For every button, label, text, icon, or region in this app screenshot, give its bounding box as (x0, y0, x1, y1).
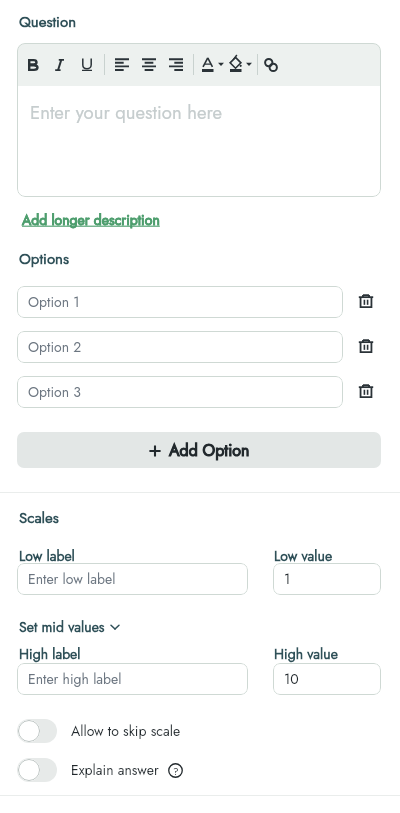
staticText: Option 2 (28, 337, 82, 357)
staticText: Enter high label (28, 669, 122, 689)
button[interactable]: Delete option 2 (355, 335, 377, 357)
button[interactable]: Align right (164, 43, 188, 86)
staticText: Add longer description (22, 210, 160, 230)
staticText: Option 3 (28, 382, 81, 402)
staticText: High value (274, 644, 338, 664)
button[interactable]: Align center (137, 43, 161, 86)
staticText: Low label (19, 546, 75, 566)
staticText: Question (19, 11, 77, 33)
button[interactable]: Italic (47, 43, 71, 86)
staticText: Allow to skip scale (71, 721, 181, 741)
staticText: Explain answer (71, 760, 159, 780)
staticText: Add Option (169, 439, 250, 462)
staticText: Set mid values (19, 617, 105, 637)
button[interactable]: 10 (273, 663, 381, 695)
staticText: 1 (284, 569, 291, 589)
button[interactable]: Fill colour (223, 43, 258, 86)
button[interactable]: Explain answer (17, 758, 183, 782)
button[interactable]: Underline (75, 43, 99, 86)
button[interactable]: Enter low label (17, 563, 248, 595)
staticText: Add longer description (22, 210, 160, 230)
staticText: Options (19, 248, 70, 270)
staticText: ? (173, 764, 179, 778)
button[interactable]: Align left (110, 43, 134, 86)
button[interactable]: Enter high label (17, 663, 248, 695)
button[interactable]: Set mid values (19, 617, 120, 637)
staticText: Enter your question here (30, 99, 223, 126)
staticText: 10 (284, 669, 299, 689)
staticText: High label (19, 644, 81, 664)
button[interactable]: Bold (20, 43, 44, 86)
staticText: Scales (19, 507, 59, 529)
staticText: Low value (274, 546, 333, 566)
button[interactable]: Delete option 1 (355, 290, 377, 312)
button[interactable]: Option 2 (17, 331, 343, 363)
other: Help (168, 763, 183, 778)
button[interactable]: Option 3 (17, 376, 343, 408)
button[interactable]: Option 1 (17, 286, 343, 318)
button[interactable]: 1 (273, 563, 381, 595)
staticText: Add Option (169, 439, 250, 462)
staticText: Enter low label (28, 569, 116, 589)
button[interactable]: Add Option (17, 432, 381, 468)
button[interactable]: Allow to skip scale (17, 719, 181, 743)
button[interactable]: Insert link (259, 43, 283, 86)
button[interactable]: Add longer description (22, 210, 160, 230)
button[interactable]: Text colour (195, 43, 230, 86)
button[interactable]: Delete option 3 (355, 380, 377, 402)
staticText: Option 1 (28, 292, 80, 312)
